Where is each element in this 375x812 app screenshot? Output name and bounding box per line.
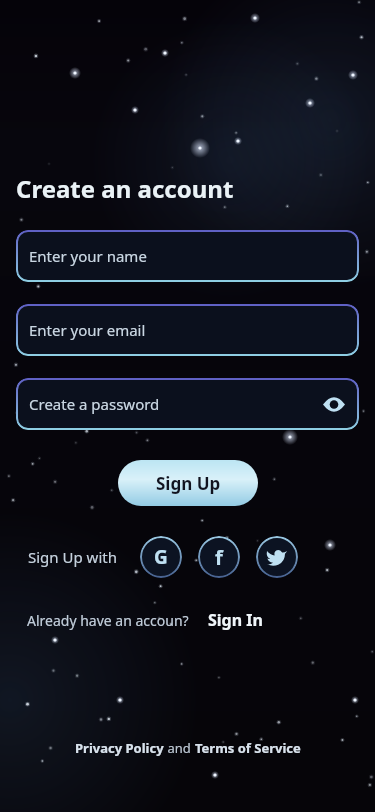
button[interactable]: Privacy Policy [75, 739, 164, 757]
button[interactable]: Sign Up [118, 460, 258, 506]
staticText: and [164, 739, 195, 757]
staticText: Create an account [16, 172, 234, 205]
staticText: Already have an accoun? [27, 611, 189, 630]
staticText: Sign Up [156, 472, 221, 495]
button[interactable] [256, 536, 298, 578]
staticText: Enter your email [29, 320, 146, 340]
staticText: G [154, 544, 168, 570]
staticText: Create a password [29, 394, 160, 414]
button[interactable]: Enter your email [16, 304, 359, 356]
button[interactable]: Enter your name [16, 230, 359, 282]
staticText: Enter your name [29, 246, 147, 266]
staticText: Sign Up with [28, 547, 117, 567]
button[interactable]: f [198, 536, 240, 578]
staticText: f [215, 544, 223, 571]
button[interactable]: Create a password [16, 378, 359, 430]
button[interactable]: Terms of Service [195, 739, 301, 757]
button[interactable]: Sign In [208, 609, 263, 631]
button[interactable]: G [140, 536, 182, 578]
